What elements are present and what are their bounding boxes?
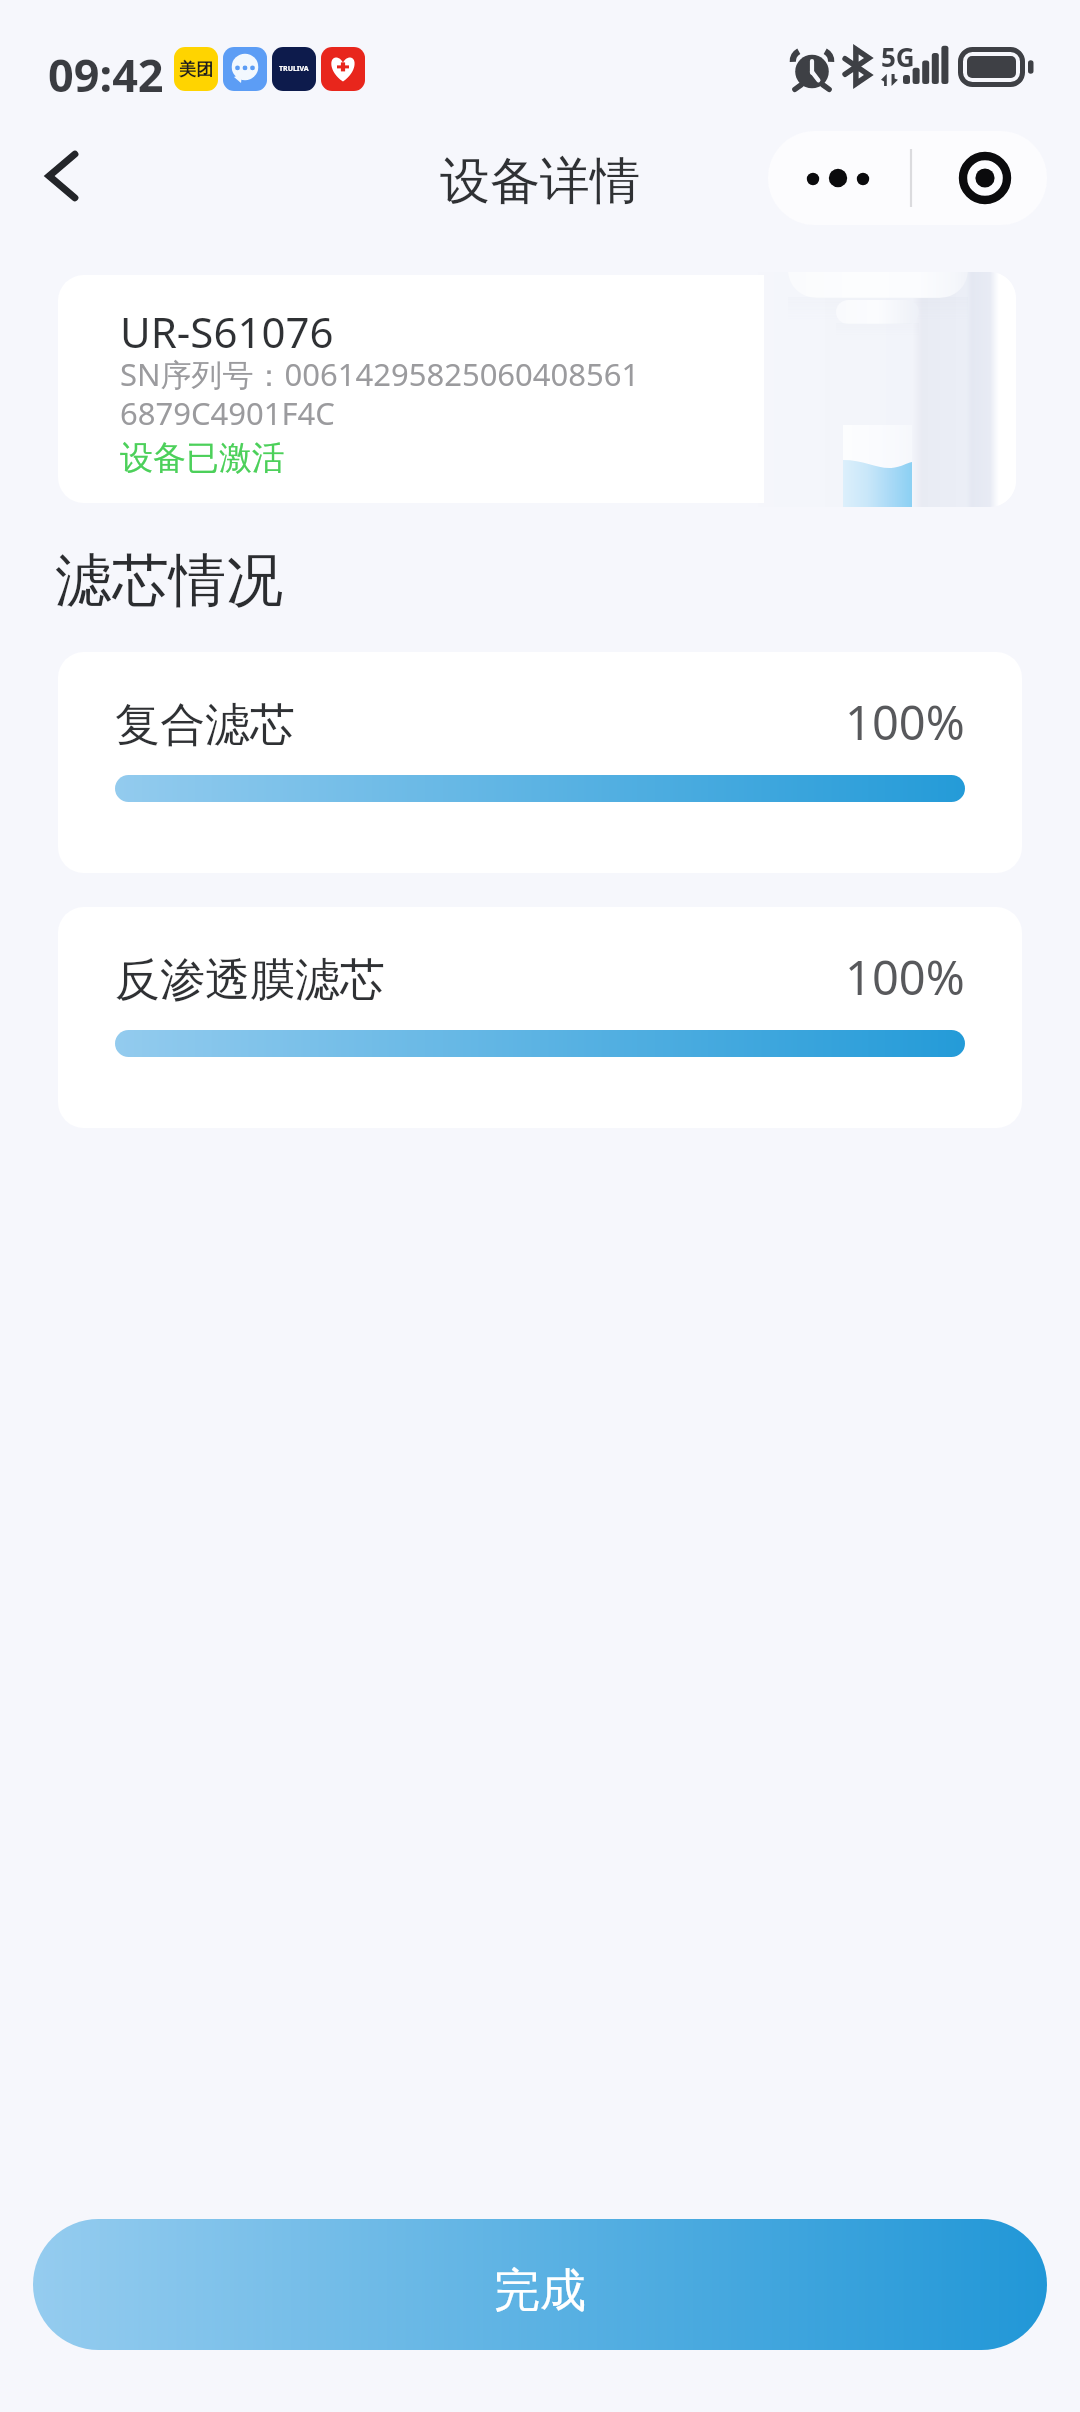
staticText: TRULIVA — [279, 64, 309, 74]
staticText: 100% — [845, 945, 965, 1009]
staticText: 09:42 — [48, 44, 164, 105]
staticText: 反渗透膜滤芯 — [115, 952, 385, 1009]
staticText: 完成 — [494, 2262, 586, 2320]
staticText: 美团 — [179, 59, 213, 80]
button[interactable]: 复合滤芯 — [58, 652, 1022, 873]
button[interactable]: More options and close — [768, 131, 1047, 225]
staticText: SN序列号：00614295825060408561 6879C4901F4C — [120, 353, 660, 434]
staticText: 设备已激活 — [120, 437, 285, 479]
staticText: 100% — [845, 690, 965, 754]
button[interactable]: 完成 — [33, 2219, 1047, 2350]
button[interactable]: 反渗透膜滤芯 — [58, 907, 1022, 1128]
staticText: 设备详情 — [440, 150, 640, 213]
staticText: 滤芯情况 — [55, 545, 283, 617]
button[interactable]: UR-S61076 — [58, 275, 764, 503]
staticText: 复合滤芯 — [115, 697, 295, 754]
button[interactable]: Back — [19, 133, 105, 219]
staticText: 5G — [881, 39, 915, 74]
staticText: UR-S61076 — [120, 303, 334, 360]
